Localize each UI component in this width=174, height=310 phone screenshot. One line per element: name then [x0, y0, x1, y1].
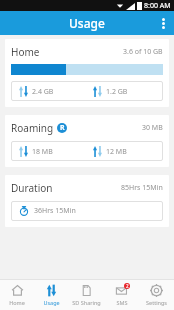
- button[interactable]: Home: [0, 279, 34, 310]
- staticText: Duration: [11, 181, 53, 195]
- staticText: Usage: [43, 299, 60, 306]
- staticText: SD Sharing: [72, 299, 101, 306]
- button[interactable]: Home: [5, 39, 169, 107]
- staticText: SMS: [116, 299, 128, 306]
- button[interactable]: 2: [104, 279, 139, 310]
- staticText: 8:00 AM: [144, 1, 171, 11]
- staticText: Usage: [69, 15, 105, 31]
- staticText: Settings: [146, 299, 167, 306]
- staticText: 18 MB: [32, 147, 53, 157]
- button[interactable]: Usage: [34, 279, 69, 310]
- staticText: 85Hrs 15Min: [121, 183, 163, 193]
- staticText: R: [60, 123, 65, 133]
- button[interactable]: Duration: [5, 175, 169, 227]
- button[interactable]: SD Sharing: [69, 279, 104, 310]
- staticText: Roaming: [11, 121, 54, 135]
- button[interactable]: Settings: [139, 279, 174, 310]
- staticText: 12 MB: [106, 147, 127, 157]
- staticText: Home: [9, 299, 25, 306]
- button[interactable]: Roaming: [5, 115, 169, 167]
- button[interactable]: More options: [152, 11, 174, 35]
- staticText: Home: [11, 45, 40, 59]
- staticText: 3.6 of 10 GB: [123, 47, 163, 57]
- staticText: 2.4 GB: [32, 87, 54, 97]
- staticText: 1.2 GB: [106, 87, 128, 97]
- staticText: 30 MB: [142, 123, 163, 133]
- staticText: 2: [126, 283, 129, 289]
- staticText: 36Hrs 15Min: [34, 206, 76, 216]
